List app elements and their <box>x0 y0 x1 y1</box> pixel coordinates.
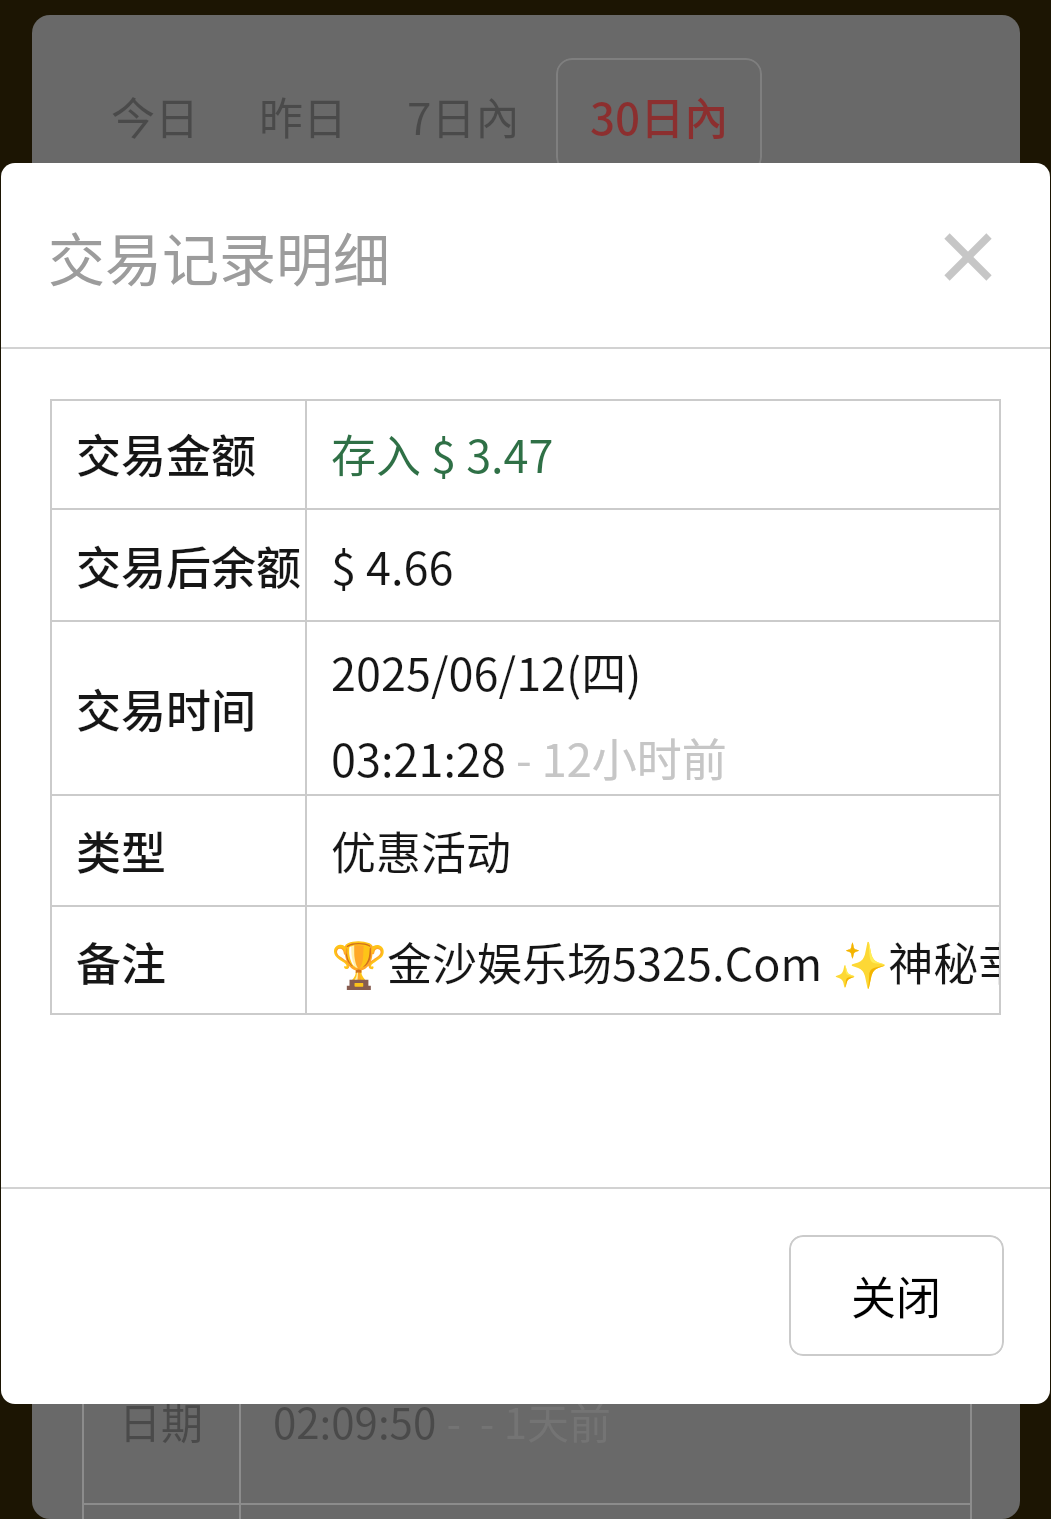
staticText: 交易时间 <box>76 676 257 741</box>
staticText: 02:09:50 <box>273 1390 437 1451</box>
staticText: 优惠活动 <box>331 818 512 883</box>
staticText: - - 1天前 <box>437 1390 612 1451</box>
button[interactable]: Close <box>921 210 1014 303</box>
staticText: 交易后余额 <box>76 533 302 598</box>
staticText: 交易金额 <box>76 421 257 486</box>
button[interactable]: 30日內 <box>556 58 762 173</box>
staticText: 关闭 <box>851 1263 942 1328</box>
staticText: - 12小时前 <box>506 725 727 790</box>
staticText: 🏆金沙娱乐场5325.Com ✨神秘幸运 <box>331 929 1001 994</box>
button[interactable]: 今日 <box>95 62 215 170</box>
staticText: 日期 <box>119 1390 204 1451</box>
staticText: 备注 <box>76 929 167 994</box>
button[interactable]: 7日內 <box>391 62 536 170</box>
staticText: 类型 <box>76 818 167 883</box>
staticText: 交易记录明细 <box>48 215 390 298</box>
button[interactable]: 昨日 <box>243 62 363 170</box>
staticText: 30日內 <box>590 84 729 148</box>
button[interactable]: 关闭 <box>789 1235 1004 1356</box>
staticText: 昨日 <box>259 84 347 148</box>
staticText: 存入 $ 3.47 <box>331 421 554 486</box>
staticText: 7日內 <box>407 84 520 148</box>
staticText: 03:21:28 <box>331 725 506 790</box>
staticText: 2025/06/12(四) <box>331 639 642 704</box>
staticText: 今日 <box>111 84 199 148</box>
staticText: $ 4.66 <box>331 533 454 598</box>
